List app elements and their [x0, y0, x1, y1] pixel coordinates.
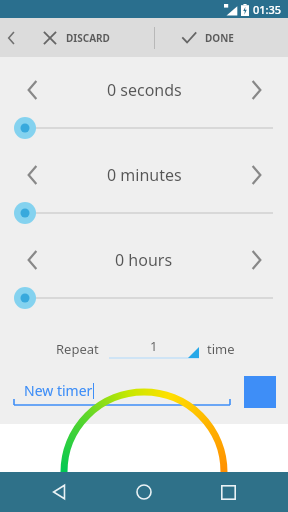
button[interactable]: Up — [0, 18, 22, 57]
button[interactable]: 0 hours — [64, 235, 224, 285]
button[interactable]: DISCARD — [22, 18, 154, 57]
button[interactable]: Increase 0 seconds — [224, 68, 288, 112]
button[interactable]: Back — [36, 472, 84, 512]
button[interactable]: Recents — [204, 472, 252, 512]
button[interactable]: New timer — [14, 376, 230, 408]
button[interactable] — [0, 285, 288, 311]
button[interactable]: Home — [120, 472, 168, 512]
staticText: 1 — [150, 337, 158, 355]
staticText: 0 seconds — [107, 79, 182, 101]
staticText: DISCARD — [66, 31, 110, 45]
button[interactable] — [0, 200, 288, 226]
button[interactable]: Decrease 0 minutes — [0, 153, 64, 197]
staticText: 0 hours — [115, 249, 173, 271]
staticText: time — [207, 340, 235, 358]
button[interactable] — [0, 115, 288, 141]
button[interactable]: 0 seconds — [64, 65, 224, 115]
button[interactable]: Increase 0 minutes — [224, 153, 288, 197]
staticText: New timer — [24, 381, 93, 400]
button[interactable]: Decrease 0 hours — [0, 238, 64, 282]
staticText: 01:35 — [253, 2, 282, 17]
staticText: 0 minutes — [107, 164, 182, 186]
button[interactable]: DONE — [155, 18, 288, 57]
button[interactable]: Decrease 0 seconds — [0, 68, 64, 112]
staticText: Repeat — [56, 340, 99, 358]
staticText: DONE — [205, 31, 234, 45]
button[interactable]: Repeat count 1 — [109, 334, 199, 364]
button[interactable]: 0 minutes — [64, 150, 224, 200]
button[interactable]: Increase 0 hours — [224, 238, 288, 282]
